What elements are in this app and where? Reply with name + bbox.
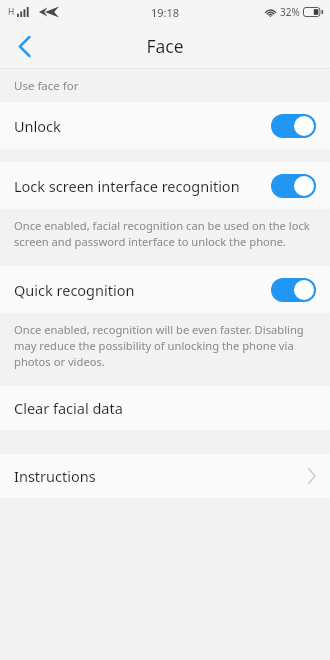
staticText: Once enabled, facial recognition can be …: [14, 218, 314, 249]
button[interactable]: Clear facial data: [0, 386, 330, 430]
button[interactable]: Unlock: [0, 102, 330, 149]
staticText: Use face for: [14, 78, 79, 94]
staticText: Unlock: [14, 116, 271, 136]
staticText: Lock screen interface recognition: [14, 176, 271, 196]
staticText: Once enabled, recognition will be even f…: [14, 322, 314, 369]
button[interactable]: Toggle on: [271, 174, 316, 198]
staticText: Instructions: [14, 466, 308, 486]
staticText: Face: [146, 34, 184, 58]
button[interactable]: Lock screen interface recognition: [0, 162, 330, 209]
button[interactable]: Quick recognition: [0, 266, 330, 313]
staticText: Clear facial data: [14, 398, 316, 418]
button[interactable]: Back: [0, 24, 48, 68]
button[interactable]: Instructions: [0, 454, 330, 498]
button[interactable]: Toggle on: [271, 278, 316, 302]
staticText: H: [8, 6, 15, 18]
button[interactable]: Toggle on: [271, 114, 316, 138]
staticText: 19:18: [151, 5, 180, 20]
staticText: Quick recognition: [14, 280, 271, 300]
staticText: 32%: [280, 5, 300, 19]
